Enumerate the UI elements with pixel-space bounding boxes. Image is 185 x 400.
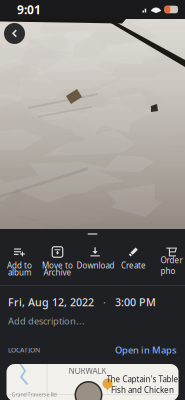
staticText: Add to: [7, 260, 32, 271]
button[interactable]: NORWALK: [6, 364, 178, 400]
button[interactable]: Open in Maps: [115, 344, 177, 356]
staticText: Archive: [43, 267, 71, 278]
staticText: Open in Maps: [115, 344, 177, 356]
button[interactable]: Back: [0, 19, 29, 48]
staticText: album: [8, 267, 31, 278]
button[interactable]: Order pho: [152, 245, 185, 278]
staticText: Add description...: [8, 315, 85, 327]
staticText: Grand Traverse Rd: [11, 391, 56, 398]
button[interactable]: Move to: [38, 245, 76, 278]
staticText: NORWALK: [68, 365, 106, 376]
staticText: The Captain's Table: [106, 374, 178, 384]
staticText: Fri, Aug 12, 2022: [8, 295, 94, 309]
staticText: Create: [121, 260, 146, 271]
button[interactable]: Download: [76, 245, 114, 278]
staticText: Download: [76, 260, 114, 271]
staticText: Order pho: [160, 255, 182, 276]
staticText: 3:00 PM: [115, 295, 156, 309]
button[interactable]: Add to: [0, 245, 38, 278]
button[interactable]: Add description...: [0, 315, 185, 327]
staticText: 9:01: [17, 1, 41, 17]
staticText: Fish and Chicken: [111, 384, 174, 395]
staticText: LOCATION: [8, 346, 40, 354]
button[interactable]: Create: [114, 245, 152, 278]
staticText: Move to: [42, 260, 73, 271]
staticText: ·: [94, 295, 115, 309]
